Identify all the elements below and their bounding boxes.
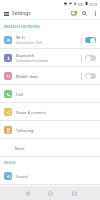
staticText: Settings [12,10,31,17]
button[interactable]: More options [90,7,100,20]
button[interactable]: Wi-Fi [0,31,100,49]
staticText: Wi-Fi [16,35,25,40]
button[interactable]: Mobile data [0,67,100,85]
staticText: More [15,146,25,151]
button[interactable]: Bluetooth [0,49,100,67]
button[interactable]: Recent apps [62,186,86,200]
button[interactable]: Toggle off [85,55,96,61]
button[interactable]: Call [0,85,100,103]
button[interactable]: Back [16,186,38,200]
button[interactable]: Cast [69,7,79,20]
staticText: Sound [16,174,28,179]
staticText: Bluetooth [16,53,35,58]
staticText: Call [16,92,23,97]
staticText: Share & connect [16,110,46,115]
staticText: Connected to 'Tecfi' [16,41,43,45]
staticText: DEVICE [4,161,17,165]
staticText: Connection not allowed [16,59,49,63]
button[interactable]: Toggle on [85,37,96,43]
button[interactable]: More [0,139,100,157]
button[interactable]: Toggle off [85,73,96,79]
button[interactable]: Tethering [0,121,100,139]
staticText: 16% [77,2,84,6]
staticText: 23:33 [89,2,98,6]
staticText: Mobile data [16,74,38,79]
button[interactable]: Sound [0,167,100,185]
button[interactable]: Search [79,7,90,20]
button[interactable]: Home [38,186,62,200]
button[interactable]: Navigation menu [0,7,12,20]
staticText: WIRELESS NETWORKS [4,25,41,29]
staticText: Tethering [16,128,34,133]
button[interactable]: Share & connect [0,103,100,121]
